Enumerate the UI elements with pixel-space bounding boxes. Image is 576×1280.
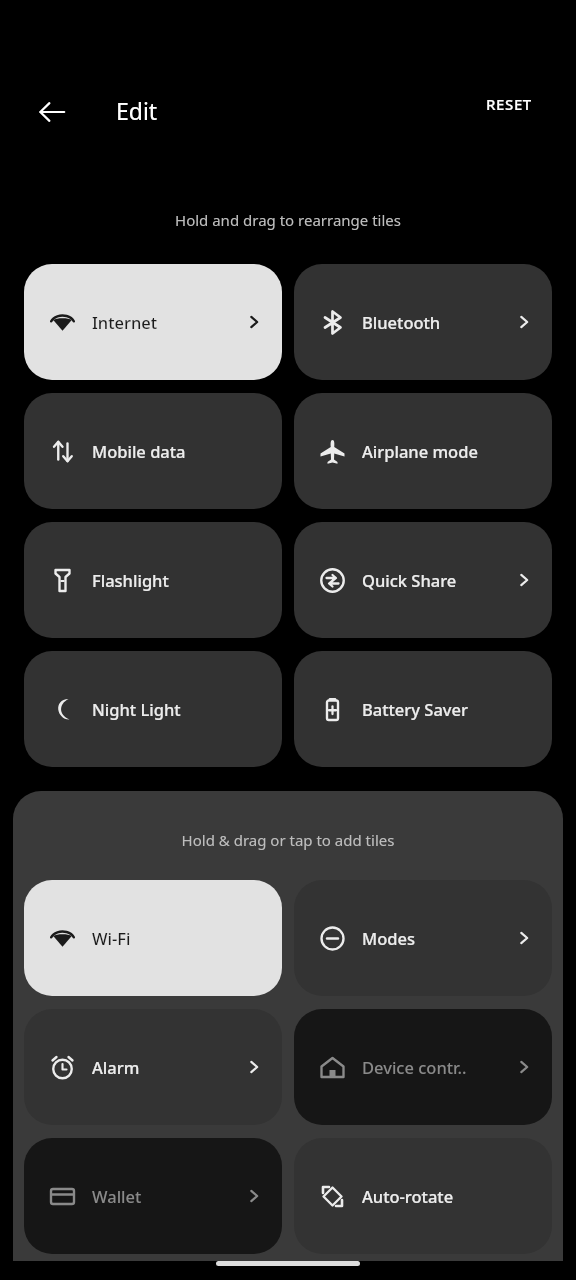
button[interactable]: Alarm — [24, 1009, 282, 1125]
button[interactable]: Battery Saver — [294, 651, 552, 767]
staticText: Airplane mode — [362, 440, 532, 462]
staticText: Alarm — [92, 1056, 246, 1078]
staticText: Mobile data — [92, 440, 262, 462]
staticText: Modes — [362, 927, 516, 949]
button[interactable]: Internet — [24, 264, 282, 380]
button[interactable]: Night Light — [24, 651, 282, 767]
button[interactable]: Flashlight — [24, 522, 282, 638]
staticText: Hold & drag or tap to add tiles — [13, 830, 563, 850]
staticText: Auto-rotate — [362, 1185, 532, 1207]
button[interactable]: Airplane mode — [294, 393, 552, 509]
staticText: Bluetooth — [362, 311, 516, 333]
staticText: Wallet — [92, 1185, 246, 1207]
button[interactable]: RESET — [478, 88, 540, 120]
staticText: RESET — [486, 94, 532, 114]
button[interactable]: Auto-rotate — [294, 1138, 552, 1254]
button[interactable]: Wallet — [24, 1138, 282, 1254]
staticText: Night Light — [92, 698, 262, 720]
staticText: Wi-Fi — [92, 927, 262, 949]
staticText: Internet — [92, 311, 246, 333]
button[interactable]: Back — [26, 86, 78, 138]
staticText: Quick Share — [362, 569, 516, 591]
staticText: Flashlight — [92, 569, 262, 591]
staticText: Edit — [116, 95, 158, 126]
button[interactable]: Device contr.. — [294, 1009, 552, 1125]
button[interactable]: Wi-Fi — [24, 880, 282, 996]
staticText: Battery Saver — [362, 698, 532, 720]
button[interactable]: Modes — [294, 880, 552, 996]
button[interactable]: Quick Share — [294, 522, 552, 638]
staticText: Hold and drag to rearrange tiles — [0, 210, 576, 230]
button[interactable]: Bluetooth — [294, 264, 552, 380]
staticText: Device contr.. — [362, 1056, 516, 1078]
button[interactable]: Mobile data — [24, 393, 282, 509]
